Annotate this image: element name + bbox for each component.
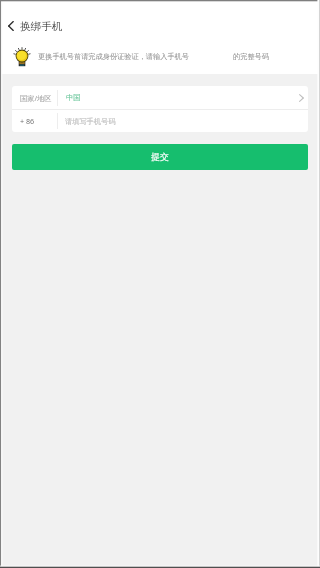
staticText: 的完整号码	[233, 52, 269, 61]
button[interactable]: 国家/地区	[12, 86, 308, 109]
staticText: 中国	[66, 93, 81, 102]
button[interactable]: 提交	[12, 144, 308, 170]
button[interactable]: Back	[0, 15, 21, 37]
staticText: 国家/地区	[20, 93, 52, 103]
staticText: + 86	[20, 116, 35, 126]
staticText: 更换手机号前请完成身份证验证，请输入手机号	[38, 52, 189, 61]
staticText: 请填写手机号码	[65, 117, 116, 126]
staticText: 提交	[151, 152, 169, 163]
button[interactable]: + 86	[12, 110, 308, 132]
staticText: 换绑手机	[20, 20, 63, 33]
